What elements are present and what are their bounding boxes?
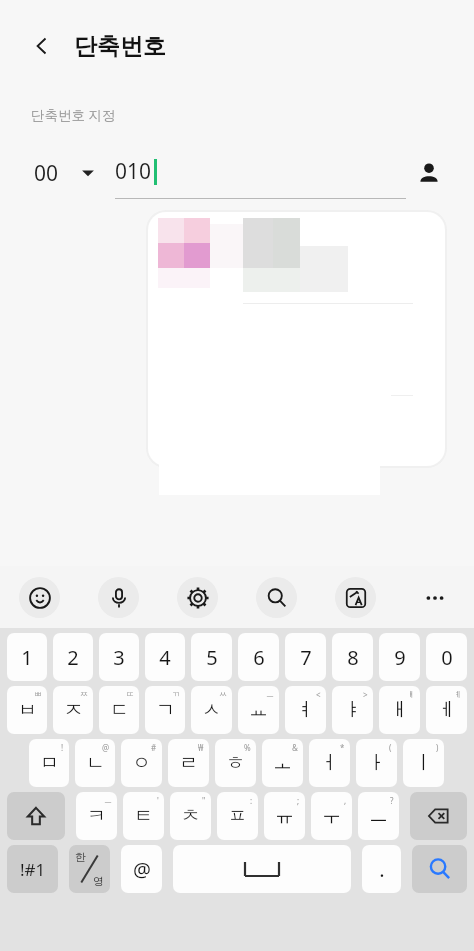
button[interactable]: ㅈ <box>53 686 93 734</box>
staticText: ㅣ <box>414 751 433 775</box>
button[interactable]: ㅣ <box>403 739 444 787</box>
button[interactable]: Backspace <box>410 792 467 840</box>
staticText: 010 <box>115 157 152 186</box>
staticText: @ <box>133 856 151 883</box>
staticText: ! <box>61 742 64 753</box>
staticText: ㅉ <box>80 689 88 699</box>
staticText: ㄲ <box>172 689 180 699</box>
button[interactable]: Space <box>173 845 351 893</box>
button[interactable]: Voice input <box>79 566 158 628</box>
staticText: 1 <box>21 644 33 671</box>
staticText: ㄷ <box>110 698 129 722</box>
button[interactable]: Korean English toggle <box>69 845 110 893</box>
staticText: ㅗ <box>273 751 292 775</box>
staticText: ㅜ <box>322 804 341 828</box>
staticText: ㄸ <box>126 689 134 699</box>
button[interactable]: Shift <box>7 792 65 840</box>
staticText: 단축번호 지정 <box>31 106 116 124</box>
button[interactable]: ㅊ <box>170 792 211 840</box>
staticText: : <box>250 795 253 806</box>
staticText: " <box>202 795 206 806</box>
button[interactable]: ㅡ <box>358 792 399 840</box>
staticText: ' <box>157 795 159 806</box>
staticText: ㅍ <box>228 804 247 828</box>
button[interactable]: ㅅ <box>191 686 232 734</box>
staticText: ㅅ <box>202 698 221 722</box>
button[interactable]: ㅔ <box>426 686 467 734</box>
button[interactable]: ㅐ <box>379 686 420 734</box>
staticText: ㅡ <box>104 795 112 805</box>
button[interactable]: ㅏ <box>356 739 397 787</box>
staticText: 6 <box>253 644 265 671</box>
button[interactable]: 9 <box>379 633 420 681</box>
staticText: ㅒ <box>407 689 415 699</box>
staticText: ㅖ <box>454 689 462 699</box>
button[interactable]: More options <box>395 566 474 628</box>
staticText: ㅡ <box>369 804 388 828</box>
staticText: 5 <box>206 644 218 671</box>
button[interactable] <box>148 212 445 466</box>
button[interactable]: ㅠ <box>264 792 305 840</box>
button[interactable]: ㄷ <box>99 686 139 734</box>
staticText: 9 <box>394 644 406 671</box>
staticText: ㅆ <box>219 689 227 699</box>
button[interactable]: 5 <box>191 633 232 681</box>
staticText: 4 <box>159 644 171 671</box>
button[interactable]: . <box>362 845 401 893</box>
staticText: 00 <box>34 159 59 188</box>
button[interactable]: ㅂ <box>7 686 47 734</box>
staticText: 한 <box>75 850 86 864</box>
button[interactable]: ㅑ <box>332 686 373 734</box>
button[interactable]: Back <box>20 24 64 68</box>
button[interactable]: 6 <box>238 633 279 681</box>
button[interactable]: Keyboard settings <box>158 566 237 628</box>
button[interactable]: 7 <box>285 633 326 681</box>
staticText: , <box>344 795 347 806</box>
button[interactable]: 00 <box>34 147 95 199</box>
staticText: ㅎ <box>226 751 245 775</box>
staticText: 8 <box>347 644 359 671</box>
button[interactable]: ㅁ <box>29 739 69 787</box>
button[interactable]: ㅎ <box>215 739 256 787</box>
staticText: ㅑ <box>343 698 362 722</box>
button[interactable]: Translate <box>316 566 395 628</box>
button[interactable]: 1 <box>7 633 47 681</box>
button[interactable]: ㄹ <box>168 739 209 787</box>
button[interactable]: ㅜ <box>311 792 352 840</box>
button[interactable]: Search <box>237 566 316 628</box>
staticText: ㄹ <box>179 751 198 775</box>
staticText: !#1 <box>20 858 46 881</box>
button[interactable]: ㅌ <box>123 792 164 840</box>
staticText: ㅏ <box>367 751 386 775</box>
button[interactable]: Select contact <box>406 150 452 196</box>
button[interactable]: @ <box>121 845 162 893</box>
button[interactable]: 3 <box>99 633 139 681</box>
staticText: < <box>316 689 321 700</box>
staticText: ) <box>436 742 439 753</box>
button[interactable]: ㅗ <box>262 739 303 787</box>
staticText: # <box>151 742 157 753</box>
button[interactable]: ㅍ <box>217 792 258 840</box>
staticText: ㅋ <box>87 804 106 828</box>
button[interactable]: ㅋ <box>76 792 117 840</box>
button[interactable]: 4 <box>145 633 185 681</box>
button[interactable]: Search <box>412 845 467 893</box>
button[interactable]: ㅇ <box>121 739 162 787</box>
button[interactable]: 8 <box>332 633 373 681</box>
button[interactable]: 0 <box>426 633 467 681</box>
button[interactable]: 2 <box>53 633 93 681</box>
staticText: ( <box>389 742 392 753</box>
button[interactable]: ㅕ <box>285 686 326 734</box>
staticText: ㅃ <box>34 689 42 699</box>
button[interactable]: !#1 <box>7 845 58 893</box>
staticText: ㅓ <box>320 751 339 775</box>
staticText: 영 <box>93 874 104 888</box>
button[interactable]: ㅛ <box>238 686 279 734</box>
button[interactable]: ㄱ <box>145 686 185 734</box>
button[interactable]: ㅓ <box>309 739 350 787</box>
button[interactable]: ㄴ <box>75 739 115 787</box>
staticText: ㅕ <box>296 698 315 722</box>
button[interactable]: Emoji <box>0 566 79 628</box>
staticText: . <box>379 856 385 883</box>
staticText: ㅁ <box>40 751 59 775</box>
